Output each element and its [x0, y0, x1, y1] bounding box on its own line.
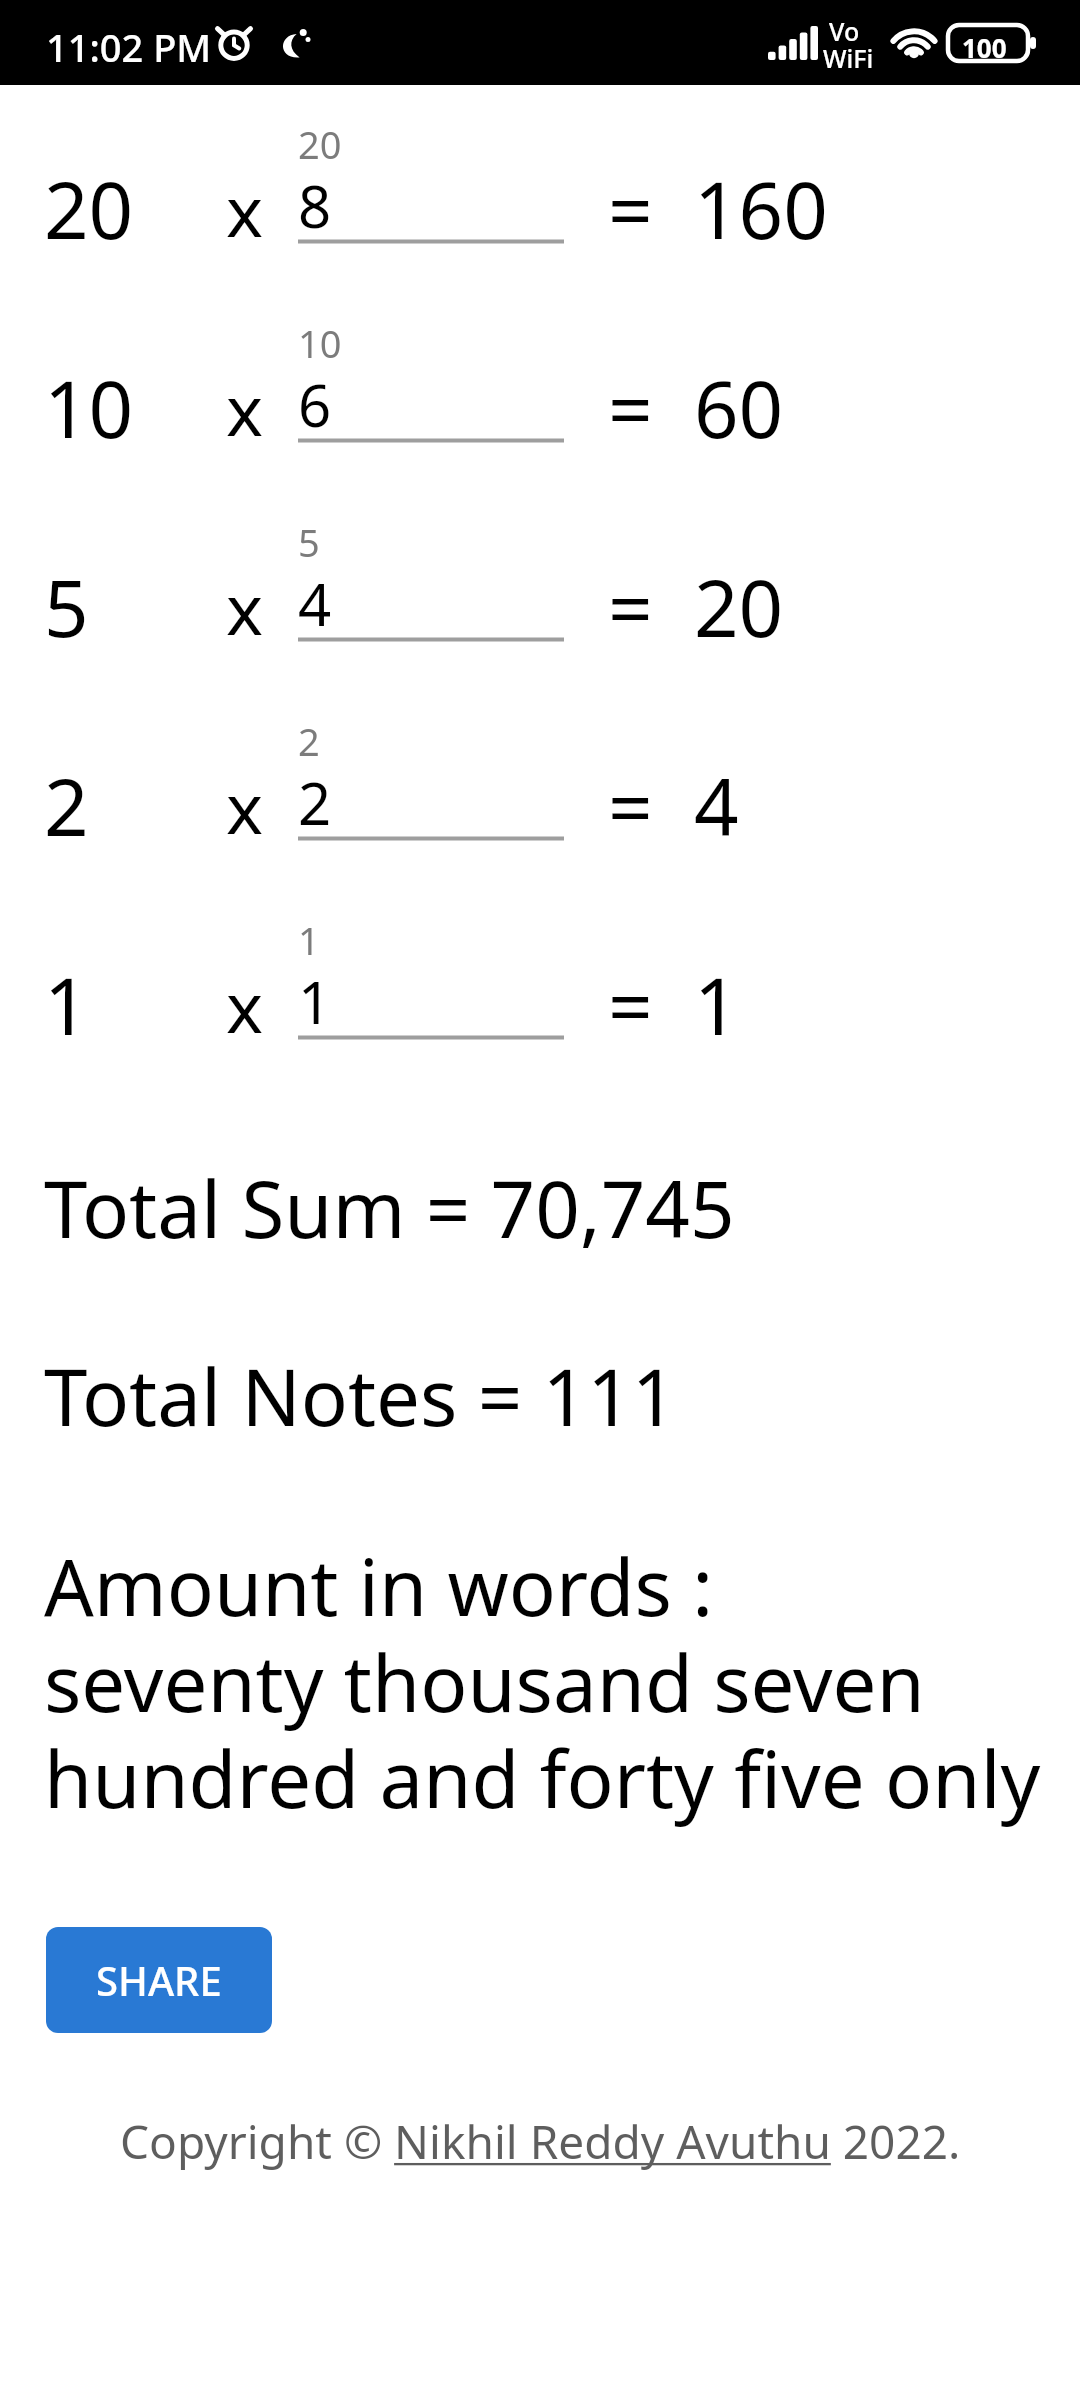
- staticText: hundred and forty five only: [44, 1725, 1041, 1831]
- staticText: 4: [298, 564, 332, 643]
- staticText: 10: [44, 355, 134, 461]
- staticText: 160: [694, 156, 828, 262]
- staticText: 5: [44, 554, 89, 660]
- button[interactable]: 5: [298, 516, 564, 642]
- staticText: 10: [298, 317, 342, 369]
- staticText: =: [608, 952, 653, 1058]
- staticText: 5: [298, 516, 320, 568]
- staticText: 100: [962, 30, 1007, 65]
- button[interactable]: 2: [298, 715, 564, 841]
- staticText: 8: [298, 166, 332, 245]
- staticText: Total Notes = 111: [44, 1343, 677, 1449]
- staticText: 1: [298, 914, 320, 966]
- staticText: 1: [44, 952, 89, 1058]
- button[interactable]: 20: [298, 118, 564, 244]
- other: Alarm set: [214, 22, 254, 62]
- staticText: Amount in words :: [44, 1533, 714, 1639]
- staticText: 20: [298, 118, 342, 170]
- staticText: x: [226, 361, 264, 456]
- staticText: seventy thousand seven: [44, 1629, 925, 1735]
- staticText: 11:02 PM: [46, 21, 212, 73]
- staticText: 20: [694, 554, 784, 660]
- staticText: 2: [298, 763, 332, 842]
- staticText: =: [608, 156, 653, 262]
- staticText: =: [608, 355, 653, 461]
- staticText: x: [226, 560, 264, 655]
- button[interactable]: SHARE: [46, 1927, 272, 2033]
- other: Do not disturb: [272, 22, 312, 62]
- staticText: 1: [694, 952, 739, 1058]
- staticText: SHARE: [96, 1953, 222, 2007]
- staticText: Copyright © Nikhil Reddy Avuthu 2022.: [120, 2110, 961, 2173]
- staticText: Vo: [829, 14, 860, 48]
- staticText: =: [608, 554, 653, 660]
- staticText: Total Sum = 70,745: [44, 1155, 735, 1261]
- staticText: WiFi: [823, 41, 874, 75]
- staticText: 6: [298, 365, 332, 444]
- staticText: x: [226, 162, 264, 257]
- staticText: 2: [44, 753, 89, 859]
- staticText: 60: [694, 355, 784, 461]
- staticText: 1: [298, 962, 332, 1041]
- staticText: 2: [298, 715, 320, 767]
- button[interactable]: 10: [298, 317, 564, 443]
- staticText: 4: [694, 753, 739, 859]
- button[interactable]: 1: [298, 914, 564, 1040]
- staticText: x: [226, 759, 264, 854]
- staticText: x: [226, 958, 264, 1053]
- staticText: =: [608, 753, 653, 859]
- staticText: 20: [44, 156, 134, 262]
